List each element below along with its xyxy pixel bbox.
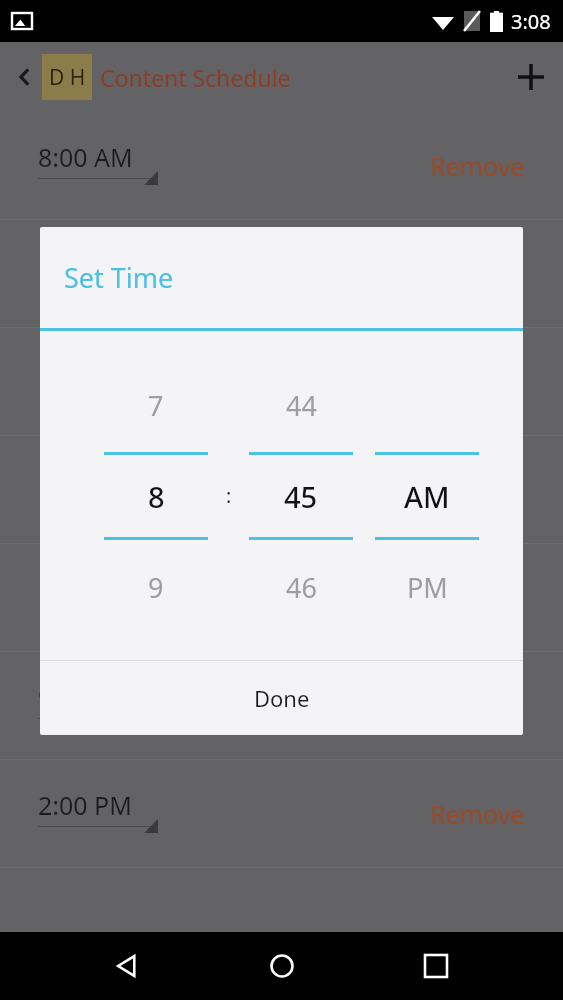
button[interactable]: Remove xyxy=(430,689,525,723)
button[interactable]: Back xyxy=(99,938,155,994)
button[interactable]: 7 xyxy=(104,358,208,634)
button[interactable] xyxy=(0,544,563,651)
staticText: Content Schedule xyxy=(100,62,291,93)
staticText: Done xyxy=(254,683,310,713)
button[interactable]: AM xyxy=(375,358,479,634)
staticText: 7 xyxy=(148,387,164,424)
button[interactable]: Add xyxy=(507,53,555,101)
staticText: 9 xyxy=(148,569,164,606)
button[interactable]: Remove xyxy=(430,149,525,183)
staticText: 9:30 AM xyxy=(38,680,133,714)
staticText: Set Time xyxy=(64,259,174,296)
button[interactable]: Remove xyxy=(430,797,525,831)
staticText: : xyxy=(226,482,232,509)
button[interactable] xyxy=(0,328,563,435)
button[interactable]: Recent apps xyxy=(408,938,464,994)
staticText: 44 xyxy=(286,387,317,424)
staticText: 2:00 PM xyxy=(38,788,132,822)
staticText: D H xyxy=(49,63,86,92)
staticText: 46 xyxy=(286,569,317,606)
button[interactable]: 8:00 AM xyxy=(0,112,563,219)
button[interactable]: 2:00 PM xyxy=(0,760,563,867)
staticText: 8 xyxy=(148,477,165,516)
staticText: 3:08 xyxy=(511,8,551,35)
button[interactable] xyxy=(0,436,563,543)
button[interactable]: Back xyxy=(8,60,42,94)
staticText: 8:00 AM xyxy=(38,140,133,174)
button[interactable] xyxy=(0,220,563,327)
staticText: AM xyxy=(404,477,450,516)
button[interactable]: 44 xyxy=(249,358,353,634)
staticText: PM xyxy=(407,569,448,606)
staticText: 45 xyxy=(284,477,318,516)
button[interactable]: Home xyxy=(254,938,310,994)
button[interactable]: Done xyxy=(40,661,523,735)
button[interactable]: 9:30 AM xyxy=(0,652,563,759)
